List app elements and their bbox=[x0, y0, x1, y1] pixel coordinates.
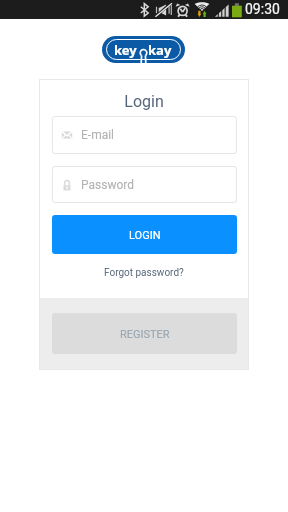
staticText: key bbox=[114, 41, 137, 59]
staticText: REGISTER bbox=[120, 328, 170, 341]
staticText: Forgot password? bbox=[104, 267, 184, 279]
button[interactable]: Forgot password? bbox=[52, 262, 236, 284]
button[interactable]: Password bbox=[52, 166, 237, 203]
staticText: 09:30 bbox=[245, 1, 280, 17]
staticText: Login bbox=[39, 92, 249, 111]
staticText: Password bbox=[81, 178, 135, 192]
button[interactable]: REGISTER bbox=[52, 313, 237, 354]
staticText: LOGIN bbox=[129, 229, 161, 242]
staticText: kay bbox=[148, 41, 172, 59]
button[interactable]: LOGIN bbox=[52, 215, 237, 254]
button[interactable]: E-mail bbox=[52, 116, 237, 154]
other: keykay logo bbox=[102, 36, 185, 63]
staticText: E-mail bbox=[81, 128, 115, 142]
